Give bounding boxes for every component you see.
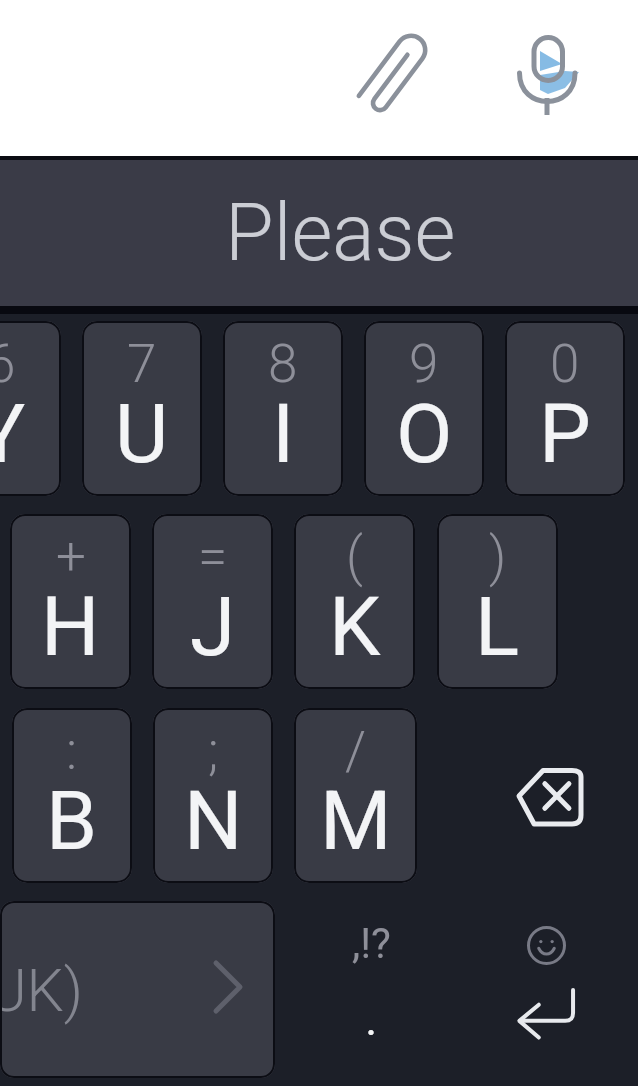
button[interactable]: 7	[82, 321, 202, 496]
button[interactable]: Backspace	[469, 708, 625, 883]
staticText: .	[364, 977, 379, 1050]
staticText: ;	[208, 720, 219, 782]
button[interactable]: :	[12, 708, 132, 883]
staticText: K	[329, 579, 381, 675]
button[interactable]: Attach	[344, 20, 436, 112]
staticText: U	[115, 386, 169, 482]
button[interactable]: ,!?	[300, 901, 440, 1078]
button[interactable]: /	[294, 708, 417, 883]
staticText: English (UK)	[0, 956, 167, 1025]
staticText: Y	[0, 386, 26, 482]
button[interactable]: (	[294, 514, 415, 689]
staticText: H	[41, 579, 100, 675]
staticText: 7	[127, 333, 157, 395]
staticText: N	[184, 773, 243, 869]
staticText: :	[66, 720, 78, 782]
staticText: P	[539, 386, 591, 482]
button[interactable]: 9	[364, 321, 484, 496]
staticText: J	[190, 579, 236, 675]
staticText: ,!?	[352, 919, 391, 968]
staticText: I	[272, 386, 295, 482]
button[interactable]: +	[10, 514, 131, 689]
button[interactable]: 6	[0, 321, 61, 496]
staticText: 9	[409, 333, 439, 395]
staticText: O	[396, 386, 453, 482]
staticText: /	[345, 720, 367, 782]
button[interactable]: )	[437, 514, 558, 689]
staticText: (	[346, 526, 363, 588]
button[interactable]: Enter	[486, 970, 606, 1059]
staticText: M	[320, 773, 392, 869]
staticText: 0	[550, 333, 580, 395]
staticText: B	[46, 773, 98, 869]
staticText: =	[198, 526, 228, 588]
staticText: 8	[268, 333, 298, 395]
button[interactable]: Voice input	[500, 20, 596, 116]
staticText: 6	[0, 333, 16, 395]
button[interactable]: Emoji	[486, 901, 606, 989]
button[interactable]: Please	[150, 160, 530, 307]
button[interactable]: =	[152, 514, 273, 689]
staticText: Please	[225, 187, 456, 280]
staticText: L	[475, 579, 520, 675]
button[interactable]: ;	[153, 708, 273, 883]
button[interactable]: English (UK)	[0, 901, 275, 1078]
staticText: )	[489, 526, 507, 588]
button[interactable]: 0	[505, 321, 625, 496]
staticText: +	[56, 526, 86, 588]
button[interactable]: 8	[223, 321, 343, 496]
